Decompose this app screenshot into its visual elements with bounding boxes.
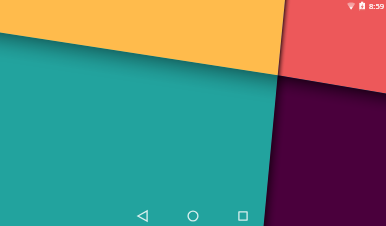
button[interactable]: Recent apps <box>218 205 268 226</box>
button[interactable]: Home <box>168 205 218 226</box>
staticText: 8:59 <box>369 1 385 11</box>
button[interactable]: Back <box>118 205 168 226</box>
